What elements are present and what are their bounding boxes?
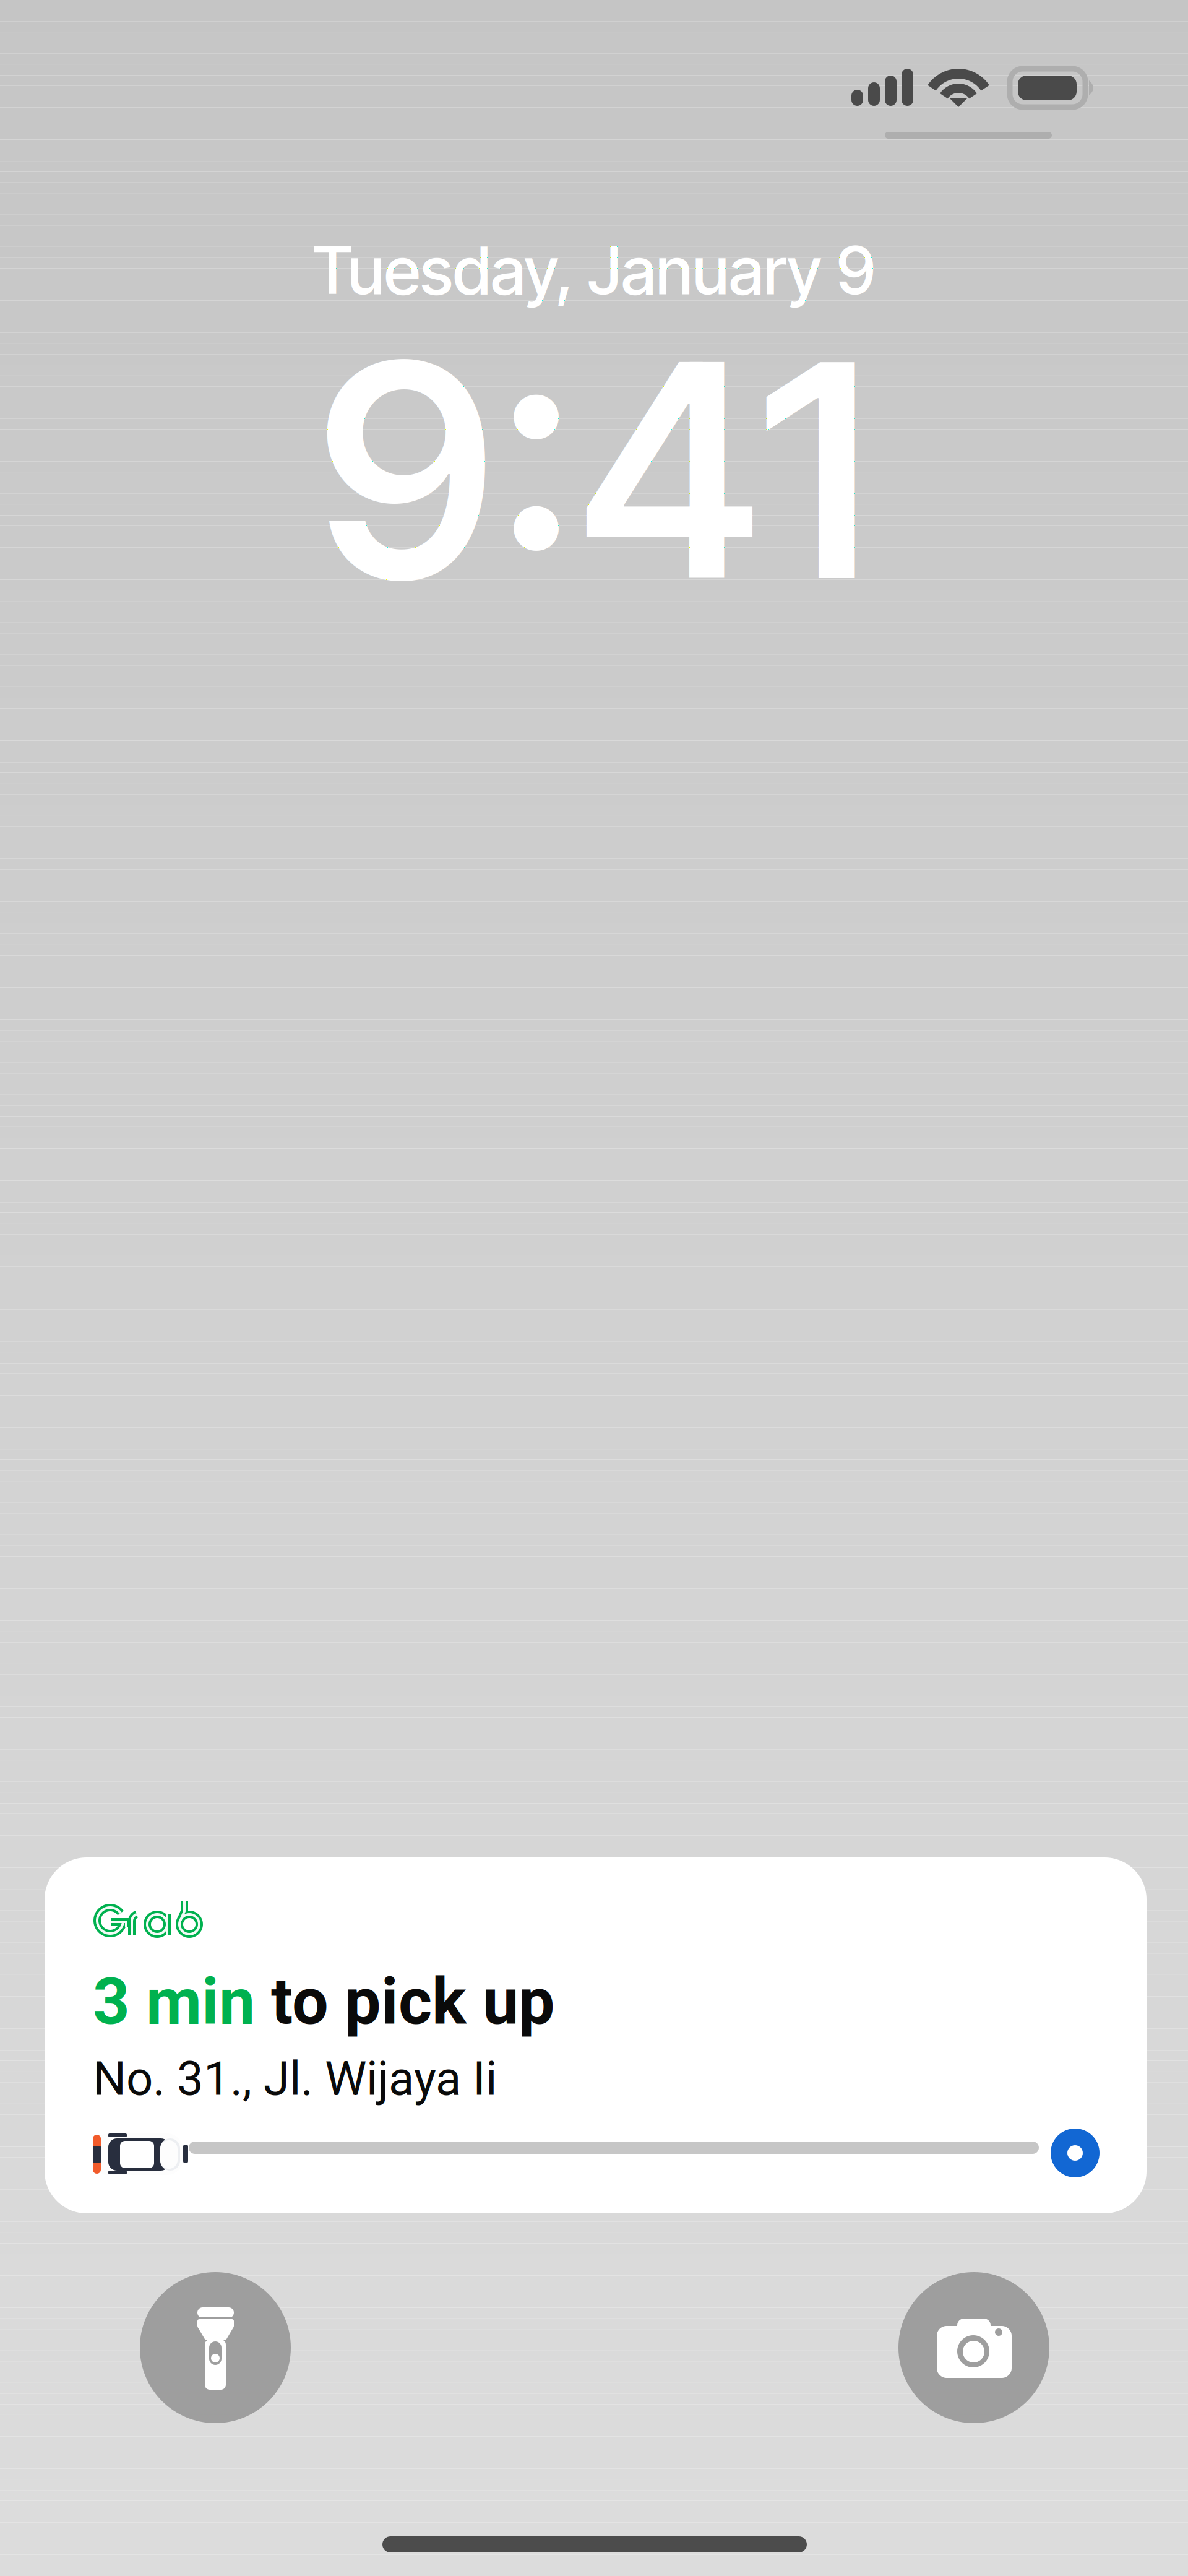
staticText: 3 min: [93, 1964, 271, 2039]
staticText: 9:41: [317, 290, 871, 650]
button[interactable]: 3 min: [45, 1857, 1147, 2213]
staticText: Tuesday, January 9: [312, 230, 876, 310]
button[interactable]: Camera: [898, 2272, 1049, 2423]
staticText: to pick up: [271, 1964, 555, 2039]
staticText: No. 31., Jl. Wijaya Ii: [93, 2051, 497, 2106]
button[interactable]: Flashlight: [140, 2272, 291, 2423]
